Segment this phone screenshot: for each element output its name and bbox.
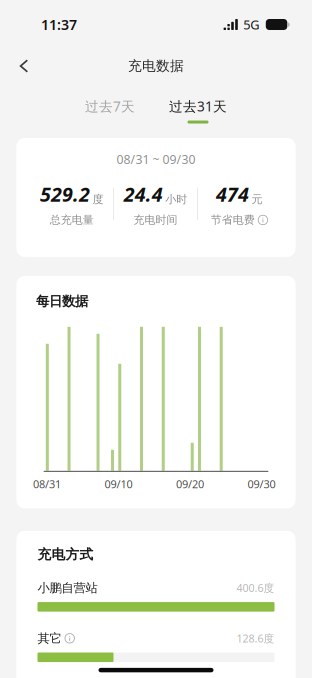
staticText: 充电方式 [37, 546, 93, 563]
staticText: 09/10 [104, 476, 132, 491]
staticText: 08/31 ~ 09/30 [116, 151, 195, 168]
staticText: 529.2 [40, 181, 90, 208]
button[interactable]: 过去31天 [161, 83, 235, 127]
staticText: 总充电量 [50, 213, 94, 227]
staticText: 400.6度 [236, 581, 274, 595]
staticText: 24.4 [124, 181, 163, 208]
staticText: 过去7天 [85, 97, 135, 115]
staticText: 128.6度 [236, 631, 274, 645]
staticText: 小鹏自营站 [37, 580, 97, 596]
staticText: 小时 [165, 192, 187, 206]
staticText: 其它 [37, 631, 61, 646]
staticText: 元 [251, 192, 262, 206]
staticText: 充电数据 [128, 57, 184, 75]
staticText: 每日数据 [36, 293, 88, 310]
staticText: 过去31天 [169, 97, 227, 115]
staticText: 11:37 [41, 15, 77, 34]
staticText: 充电时间 [133, 213, 177, 227]
staticText: 08/31 [33, 476, 61, 491]
staticText: 09/30 [247, 476, 275, 491]
staticText: 09/20 [176, 476, 204, 491]
staticText: 节省电费 [211, 213, 255, 227]
button[interactable]: Back [0, 50, 42, 82]
staticText: 5G [243, 16, 259, 33]
staticText: 474 [216, 181, 249, 208]
button[interactable]: 过去7天 [77, 83, 143, 127]
staticText: 度 [93, 192, 104, 206]
